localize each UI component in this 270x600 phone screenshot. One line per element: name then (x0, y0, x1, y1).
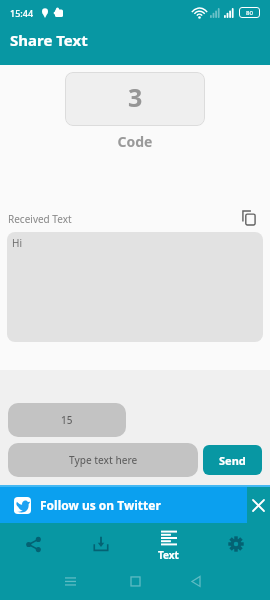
button[interactable] (67, 523, 134, 565)
staticText: 80 (246, 9, 253, 17)
staticText: 3 (128, 80, 143, 114)
button[interactable] (247, 487, 270, 523)
staticText: Share Text (10, 30, 88, 50)
button[interactable]: 3 (65, 72, 205, 126)
staticText: Type text here (69, 453, 138, 467)
staticText: Hi (12, 236, 22, 250)
staticText: Follow us on Twitter (40, 497, 161, 513)
staticText: Received Text (8, 212, 72, 226)
staticText: Code (0, 132, 270, 151)
button[interactable]: Type text here (8, 443, 198, 477)
staticText: Text (158, 548, 179, 562)
button[interactable] (241, 210, 257, 230)
staticText: 15 (61, 413, 73, 427)
button[interactable] (0, 523, 67, 565)
staticText: Send (219, 453, 246, 468)
staticText: 15:44 (10, 7, 34, 19)
button[interactable]: Text (134, 523, 202, 565)
button[interactable]: 15 (8, 403, 126, 437)
button[interactable]: Follow us on Twitter (0, 487, 247, 523)
button[interactable] (202, 523, 270, 565)
button[interactable]: Send (203, 445, 262, 475)
